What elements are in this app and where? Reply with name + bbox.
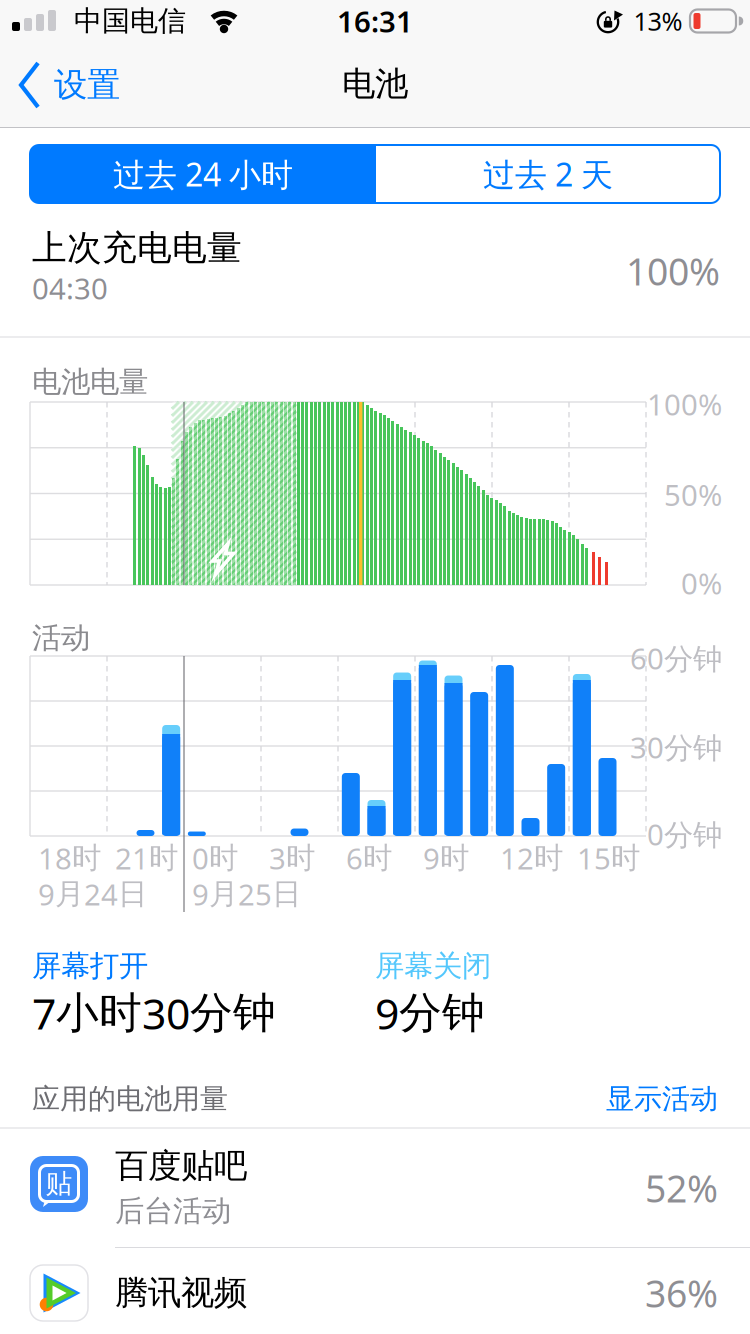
staticText: 过去 2 天 — [483, 153, 613, 195]
staticText: 电池 — [342, 63, 408, 104]
staticText: 7 — [32, 985, 56, 1041]
staticText: 18 — [38, 838, 72, 877]
staticText: 0% — [681, 563, 722, 602]
staticText: 后台活动 — [115, 1193, 231, 1229]
staticText: 9 — [375, 985, 399, 1041]
button[interactable]: 显示活动 — [518, 1082, 718, 1116]
staticText: 过去 24 小时 — [113, 153, 293, 195]
staticText: 0分钟 — [647, 814, 722, 853]
staticText: 15 — [577, 838, 611, 877]
staticText: 24 — [84, 874, 118, 913]
staticText: 时 — [611, 840, 640, 876]
staticText: 设置 — [54, 64, 120, 105]
staticText: 9 — [38, 874, 55, 913]
staticText: 日 — [272, 876, 301, 912]
staticText: 30 — [142, 985, 190, 1041]
staticText: 100% — [626, 246, 720, 296]
staticText: 0 — [192, 838, 209, 877]
staticText: 百度贴吧 — [115, 1145, 247, 1186]
staticText: 中国电信 — [74, 4, 186, 38]
staticText: 13% — [633, 4, 682, 38]
staticText: 9 — [192, 874, 209, 913]
button[interactable]: 腾讯视频 — [0, 1248, 750, 1334]
staticText: 贴 — [45, 1167, 72, 1200]
staticText: 时 — [534, 840, 563, 876]
staticText: 3 — [269, 838, 286, 877]
staticText: 12 — [500, 838, 534, 877]
button[interactable]: 过去 24 小时 — [30, 145, 376, 203]
staticText: 04:30 — [32, 268, 108, 307]
staticText: 屏幕关闭 — [375, 948, 491, 984]
staticText: 9 — [423, 838, 440, 877]
staticText: 电池电量 — [32, 364, 148, 400]
staticText: 50% — [664, 475, 722, 514]
staticText: 分钟 — [190, 987, 276, 1039]
staticText: 日 — [118, 876, 147, 912]
staticText: 屏幕打开 — [32, 948, 148, 984]
staticText: 6 — [346, 838, 363, 877]
staticText: 时 — [440, 840, 469, 876]
staticText: 时 — [72, 840, 101, 876]
staticText: 分钟 — [399, 987, 485, 1039]
staticText: 腾讯视频 — [115, 1272, 247, 1313]
staticText: 25 — [238, 874, 272, 913]
staticText: 时 — [149, 840, 178, 876]
button[interactable]: 贴 — [0, 1128, 750, 1247]
staticText: 时 — [363, 840, 392, 876]
staticText: 活动 — [32, 620, 90, 656]
staticText: 52% — [645, 1163, 718, 1213]
button[interactable]: 过去 2 天 — [376, 145, 720, 203]
staticText: 小时 — [56, 987, 142, 1039]
staticText: 60分钟 — [630, 638, 722, 677]
staticText: 上次充电电量 — [32, 227, 242, 269]
staticText: 36% — [645, 1268, 718, 1318]
staticText: 月 — [55, 876, 84, 912]
button[interactable]: 返回设置 — [17, 54, 147, 116]
staticText: 月 — [209, 876, 238, 912]
staticText: 应用的电池用量 — [32, 1082, 228, 1116]
staticText: 时 — [286, 840, 315, 876]
staticText: 21 — [115, 838, 149, 877]
staticText: 时 — [209, 840, 238, 876]
staticText: 16:31 — [337, 1, 413, 40]
staticText: 100% — [647, 384, 722, 423]
staticText: 显示活动 — [606, 1082, 718, 1116]
staticText: 30分钟 — [630, 727, 722, 766]
